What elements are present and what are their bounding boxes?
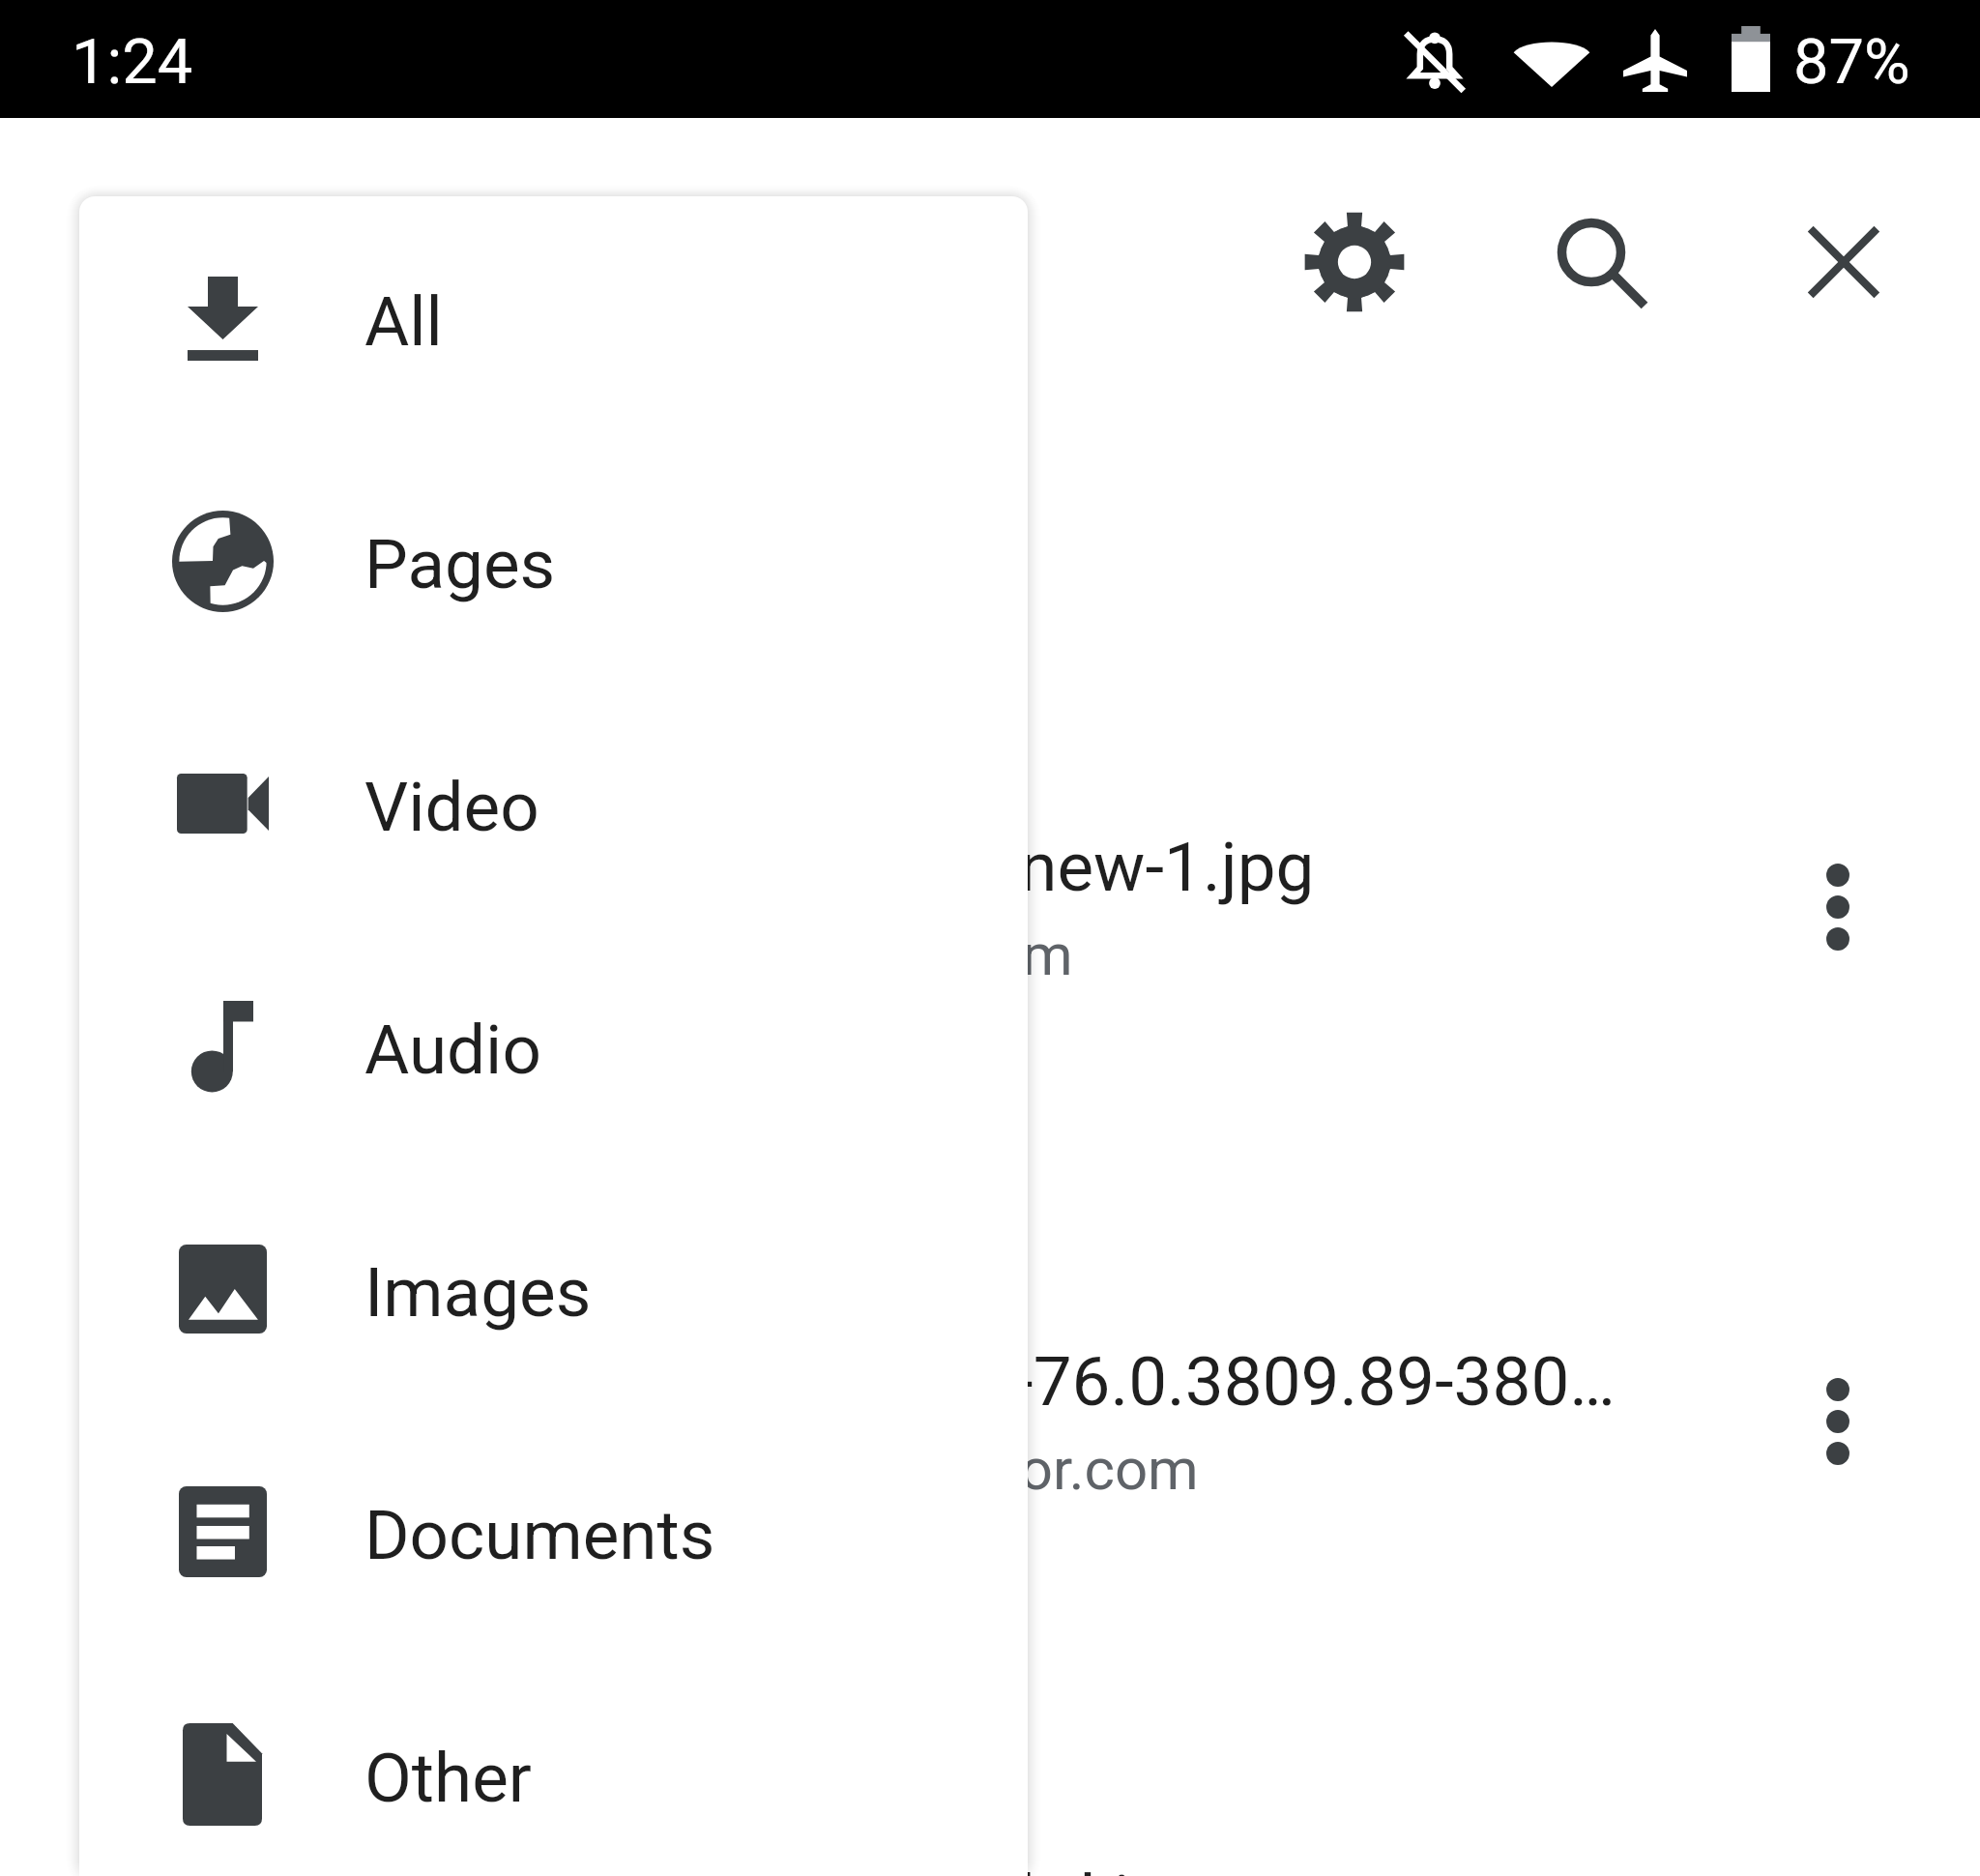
button[interactable]: Images [79,1167,1028,1410]
button[interactable]: Documents [79,1410,1028,1653]
staticText: Pages [364,524,556,604]
staticText: chrome-mirror.com [704,1435,1199,1503]
staticText: Audio [364,1010,541,1090]
button[interactable]: wallpaper-hd.jpg [0,1843,1980,1876]
staticText: Video [364,767,539,847]
button[interactable]: More options [1770,839,1906,975]
button[interactable]: Video [79,682,1028,924]
button[interactable]: Audio [79,924,1028,1167]
staticText: All [364,281,443,362]
staticText: Images [364,1252,592,1333]
button[interactable]: Settings [1282,190,1427,335]
button[interactable]: wallpaper-new-1.jpg [0,810,1980,1004]
button[interactable]: More options [1770,1354,1906,1489]
staticText: 1:24 [72,25,193,99]
button[interactable]: Other [79,1653,1028,1876]
button[interactable]: Pages [79,439,1028,682]
staticText: Other [364,1738,532,1818]
staticText: chromium-76.0.3809.89-380… [704,1341,1616,1422]
staticText: wallpaper.com [696,921,1073,988]
staticText: wallpaper-hd.jpg [704,1860,1208,1876]
button[interactable]: Close [1771,190,1916,335]
staticText: Documents [364,1495,715,1575]
staticText: wallpaper-new-1.jpg [704,827,1315,907]
button[interactable]: All [79,196,1028,439]
button[interactable]: chromium-76.0.3809.89-380… [0,1325,1980,1518]
staticText: 87% [1793,25,1910,99]
button[interactable]: Search [1529,190,1674,335]
